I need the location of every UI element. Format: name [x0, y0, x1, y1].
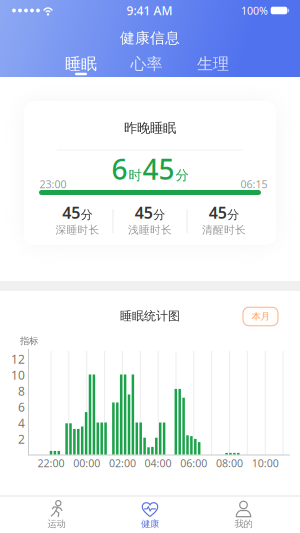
staticText: 00:00	[73, 456, 100, 470]
staticText: 45	[62, 202, 80, 223]
button[interactable]: 生理	[185, 52, 241, 76]
staticText: 清醒时长	[202, 223, 246, 236]
staticText: 6	[111, 150, 127, 188]
staticText: 08:00	[216, 456, 243, 470]
button[interactable]: 运动	[12, 498, 100, 531]
button[interactable]: 我的	[199, 498, 287, 531]
staticText: 12	[11, 351, 25, 367]
staticText: 昨晚睡眠	[124, 120, 176, 136]
staticText: 23:00	[39, 177, 66, 191]
staticText: 45	[142, 150, 174, 188]
staticText: 生理	[197, 54, 229, 74]
staticText: 本月	[251, 311, 269, 322]
staticText: 8	[18, 383, 25, 399]
staticText: 04:00	[145, 456, 172, 470]
staticText: 6	[18, 399, 25, 415]
staticText: 02:00	[109, 456, 136, 470]
staticText: 睡眠	[65, 54, 97, 74]
button[interactable]: 睡眠	[53, 52, 109, 76]
staticText: 分	[175, 167, 188, 184]
staticText: 心率	[130, 54, 162, 74]
staticText: 运动	[47, 518, 65, 530]
staticText: 时	[128, 167, 141, 184]
staticText: 我的	[234, 518, 252, 530]
staticText: 健康	[141, 518, 159, 530]
staticText: 深睡时长	[55, 223, 99, 236]
staticText: 分	[153, 207, 165, 222]
staticText: 分	[227, 207, 239, 222]
staticText: 10	[11, 367, 25, 383]
staticText: 健康信息	[120, 29, 180, 47]
button[interactable]: 心率	[118, 52, 174, 76]
staticText: 45	[135, 202, 153, 223]
staticText: 指标	[20, 335, 38, 347]
staticText: 06:00	[180, 456, 207, 470]
staticText: 2	[18, 431, 25, 447]
staticText: 9:41 AM	[126, 2, 172, 18]
staticText: 浅睡时长	[128, 223, 172, 236]
staticText: 分	[81, 207, 93, 222]
button[interactable]: 健康	[106, 498, 194, 531]
staticText: 22:00	[37, 456, 64, 470]
staticText: 4	[18, 415, 25, 431]
staticText: 10:00	[252, 456, 279, 470]
staticText: 06:15	[240, 177, 267, 191]
button[interactable]: 本月	[243, 307, 278, 326]
staticText: 睡眠统计图	[120, 309, 180, 323]
staticText: 100%	[241, 3, 268, 18]
staticText: 45	[209, 202, 227, 223]
